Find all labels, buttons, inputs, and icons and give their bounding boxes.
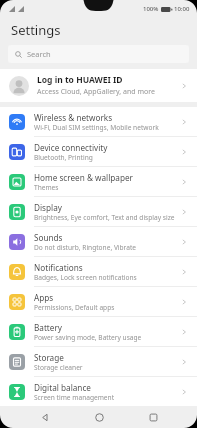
staticText: Wireless & networks (34, 112, 113, 123)
button[interactable]: Sounds (0, 227, 197, 257)
button[interactable]: Search (8, 45, 189, 63)
button[interactable]: Wireless & networks (0, 107, 197, 137)
staticText: Settings (11, 21, 61, 39)
staticText: Sounds (34, 232, 63, 243)
button[interactable]: Digital balance (0, 377, 197, 406)
staticText: Access Cloud, AppGallery, and more (37, 87, 155, 97)
button[interactable]: Log in to HUAWEI ID (0, 69, 197, 102)
staticText: Bluetooth, Printing (34, 153, 93, 162)
staticText: Device connectivity (34, 142, 108, 153)
button[interactable]: Apps (0, 287, 197, 317)
staticText: Digital balance (34, 382, 91, 393)
button[interactable]: Device connectivity (0, 137, 197, 167)
staticText: Storage (34, 352, 64, 363)
button[interactable]: Battery (0, 317, 197, 347)
button[interactable]: Back (33, 406, 55, 428)
button[interactable]: Notifications (0, 257, 197, 287)
staticText: Wi-Fi, Dual SIM settings, Mobile network (34, 123, 159, 132)
staticText: 10:00 (174, 5, 190, 13)
staticText: Home screen & wallpaper (34, 172, 133, 183)
staticText: Log in to HUAWEI ID (37, 74, 123, 86)
button[interactable]: Home (88, 406, 110, 428)
staticText: Search (27, 49, 51, 59)
staticText: Storage cleaner (34, 363, 83, 372)
staticText: Screen time management (34, 393, 115, 402)
staticText: 100% (143, 5, 159, 13)
staticText: Themes (34, 183, 59, 192)
button[interactable]: Home screen & wallpaper (0, 167, 197, 197)
staticText: Power saving mode, Battery usage (34, 333, 142, 342)
staticText: Apps (34, 292, 54, 303)
staticText: Display (34, 202, 62, 213)
button[interactable]: Storage (0, 347, 197, 377)
staticText: Badges, Lock screen notifications (34, 273, 137, 282)
button[interactable]: Display (0, 197, 197, 227)
staticText: Battery (34, 322, 63, 333)
staticText: Notifications (34, 262, 83, 273)
staticText: Brightness, Eye comfort, Text and displa… (34, 213, 175, 222)
button[interactable]: Recents (142, 406, 164, 428)
staticText: Do not disturb, Ringtone, Vibrate (34, 243, 136, 252)
staticText: Permissions, Default apps (34, 303, 115, 312)
